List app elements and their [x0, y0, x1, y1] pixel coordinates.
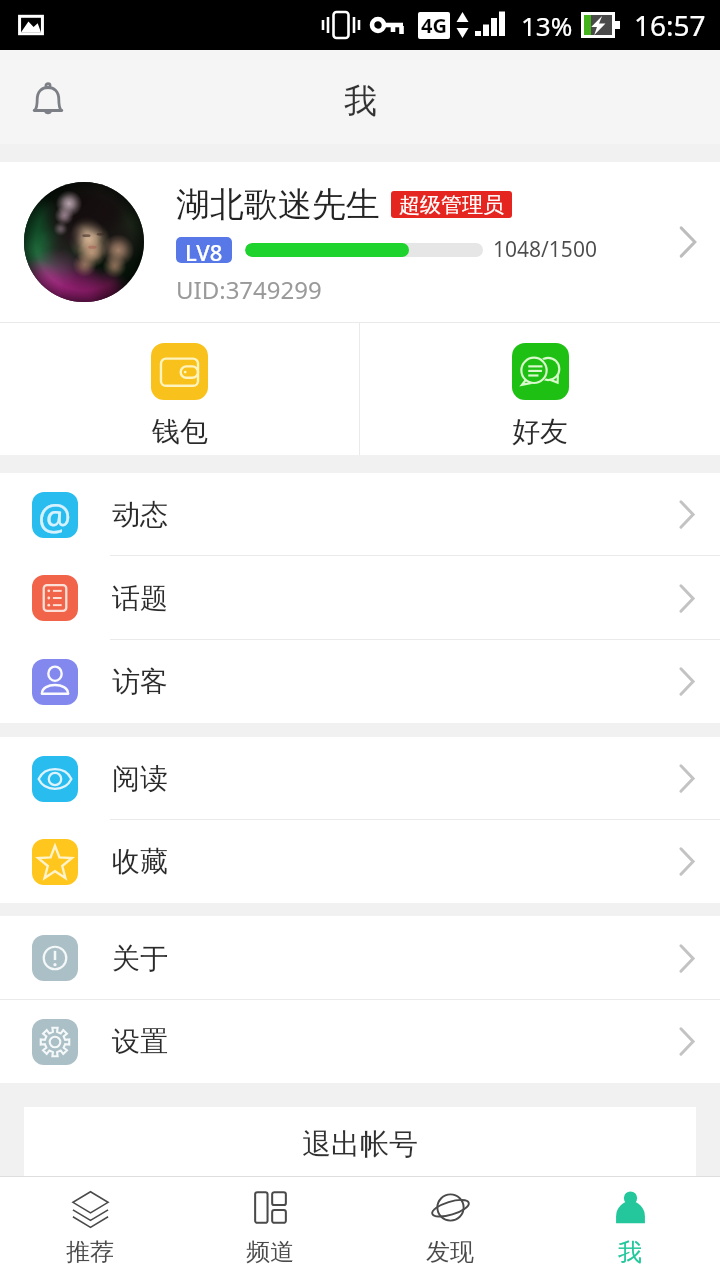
staticText: 16:57	[634, 6, 706, 44]
staticText: 超级管理员	[399, 192, 504, 218]
button[interactable]: 好友	[360, 323, 720, 455]
staticText: 退出帐号	[302, 1126, 418, 1163]
staticText: 频道	[246, 1237, 294, 1267]
button[interactable]: 推荐	[0, 1177, 180, 1280]
button[interactable]: 访客	[0, 640, 720, 723]
staticText: UID:3749299	[176, 273, 322, 306]
staticText: 关于	[112, 941, 679, 976]
button[interactable]: 设置	[0, 1000, 720, 1083]
button[interactable]: 频道	[180, 1177, 360, 1280]
staticText: 发现	[426, 1237, 474, 1267]
button[interactable]: 收藏	[0, 820, 720, 903]
staticText: 收藏	[112, 844, 679, 879]
staticText: 动态	[112, 497, 679, 532]
button[interactable]: 钱包	[0, 323, 359, 455]
button[interactable]: 发现	[360, 1177, 540, 1280]
button[interactable]: 关于	[0, 916, 720, 1000]
staticText: 话题	[112, 581, 679, 616]
staticText: 钱包	[152, 414, 208, 449]
button[interactable]: 湖北歌迷先生	[0, 162, 720, 322]
staticText: 设置	[112, 1024, 679, 1059]
staticText: 13%	[521, 8, 573, 43]
staticText: 我	[344, 80, 377, 122]
staticText: @	[38, 492, 72, 536]
button[interactable]: 我	[540, 1177, 720, 1280]
staticText: 1048/1500	[493, 235, 597, 264]
button[interactable]: 退出帐号	[24, 1107, 696, 1176]
staticText: 好友	[512, 414, 568, 449]
button[interactable]: @	[0, 473, 720, 556]
staticText: 推荐	[66, 1237, 114, 1267]
button[interactable]: Notifications	[12, 61, 84, 133]
staticText: 湖北歌迷先生	[176, 183, 380, 226]
staticText: 4G	[421, 12, 447, 39]
button[interactable]: 阅读	[0, 737, 720, 820]
staticText: 阅读	[112, 761, 679, 796]
staticText: 访客	[112, 664, 679, 699]
staticText: LV8	[185, 237, 223, 263]
staticText: 我	[618, 1237, 642, 1267]
button[interactable]: 话题	[0, 556, 720, 640]
